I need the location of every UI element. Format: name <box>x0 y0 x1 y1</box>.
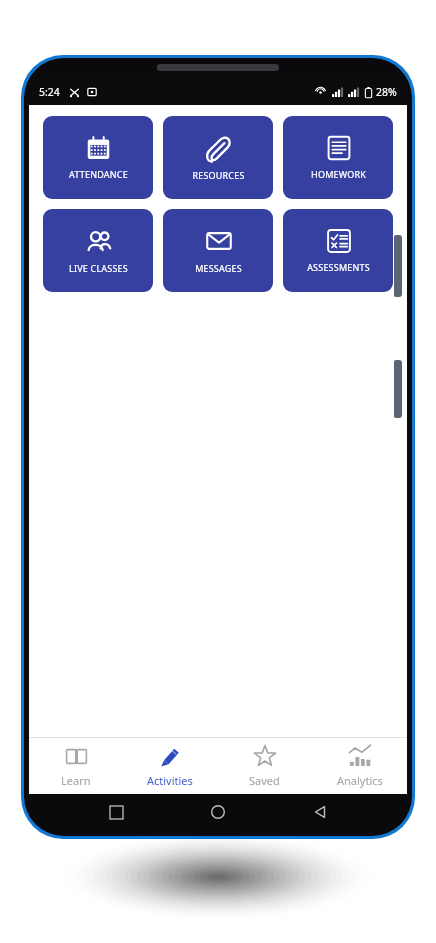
staticText: Saved <box>249 773 280 788</box>
staticText: ASSESSMENTS <box>307 261 370 273</box>
button[interactable]: RESOURCES <box>163 116 273 199</box>
staticText: 28% <box>376 85 397 99</box>
staticText: MESSAGES <box>195 262 242 274</box>
button[interactable]: MESSAGES <box>163 209 273 292</box>
button[interactable]: Activities <box>123 738 217 794</box>
button[interactable]: ASSESSMENTS <box>283 209 393 292</box>
staticText: Activities <box>147 773 193 788</box>
button[interactable]: Learn <box>29 738 123 794</box>
button[interactable]: ATTENDANCE <box>43 116 153 199</box>
button[interactable]: Home <box>203 797 233 827</box>
staticText: Learn <box>61 773 91 788</box>
staticText: LIVE CLASSES <box>69 262 128 274</box>
button[interactable]: HOMEWORK <box>283 116 393 199</box>
staticText: HOMEWORK <box>311 168 366 180</box>
button[interactable]: Analytics <box>312 738 407 794</box>
button[interactable]: LIVE CLASSES <box>43 209 153 292</box>
staticText: Analytics <box>337 773 383 788</box>
button[interactable]: Recent apps <box>101 797 131 827</box>
staticText: ATTENDANCE <box>69 168 128 180</box>
staticText: 5:24 <box>39 85 60 99</box>
button[interactable]: Back <box>305 797 335 827</box>
button[interactable]: Saved <box>217 738 312 794</box>
staticText: RESOURCES <box>192 169 245 181</box>
